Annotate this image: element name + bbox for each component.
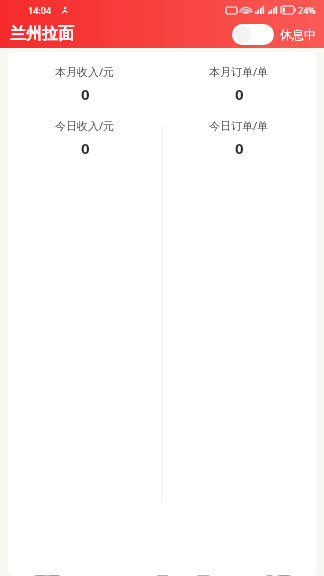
staticText: 兰州拉面 [10,24,74,44]
staticText: 今日订单/单 [209,118,269,133]
button[interactable]: 今日订单/单 [162,118,316,158]
staticText: 0 [235,84,244,104]
staticText: 休息中 [280,27,316,42]
staticText: 今日收入/元 [55,118,115,133]
staticText: 0 [81,84,90,104]
staticText: 0 [235,138,244,158]
staticText: 本月收入/元 [55,64,115,79]
staticText: 14:04 [28,4,52,16]
staticText: 0 [81,138,90,158]
button[interactable]: 本月收入/元 [8,64,162,104]
button[interactable]: 今日收入/元 [8,118,162,158]
staticText: 本月订单/单 [209,64,269,79]
staticText: 24% [298,4,316,16]
button[interactable]: 营业状态开关 [232,24,274,45]
button[interactable]: 本月订单/单 [162,64,316,104]
